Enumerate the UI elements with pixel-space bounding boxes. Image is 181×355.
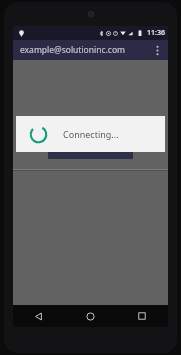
button[interactable]: Recent apps bbox=[116, 305, 168, 327]
button[interactable] bbox=[48, 148, 133, 159]
button[interactable]: Home bbox=[64, 305, 116, 327]
staticText: example@solutioninc.com bbox=[20, 44, 148, 56]
button[interactable]: More options bbox=[148, 41, 166, 59]
staticText: 11:36 bbox=[147, 28, 165, 38]
button[interactable]: Connecting... bbox=[16, 116, 165, 152]
staticText: Connecting... bbox=[63, 128, 119, 140]
button[interactable]: Back bbox=[13, 305, 64, 327]
